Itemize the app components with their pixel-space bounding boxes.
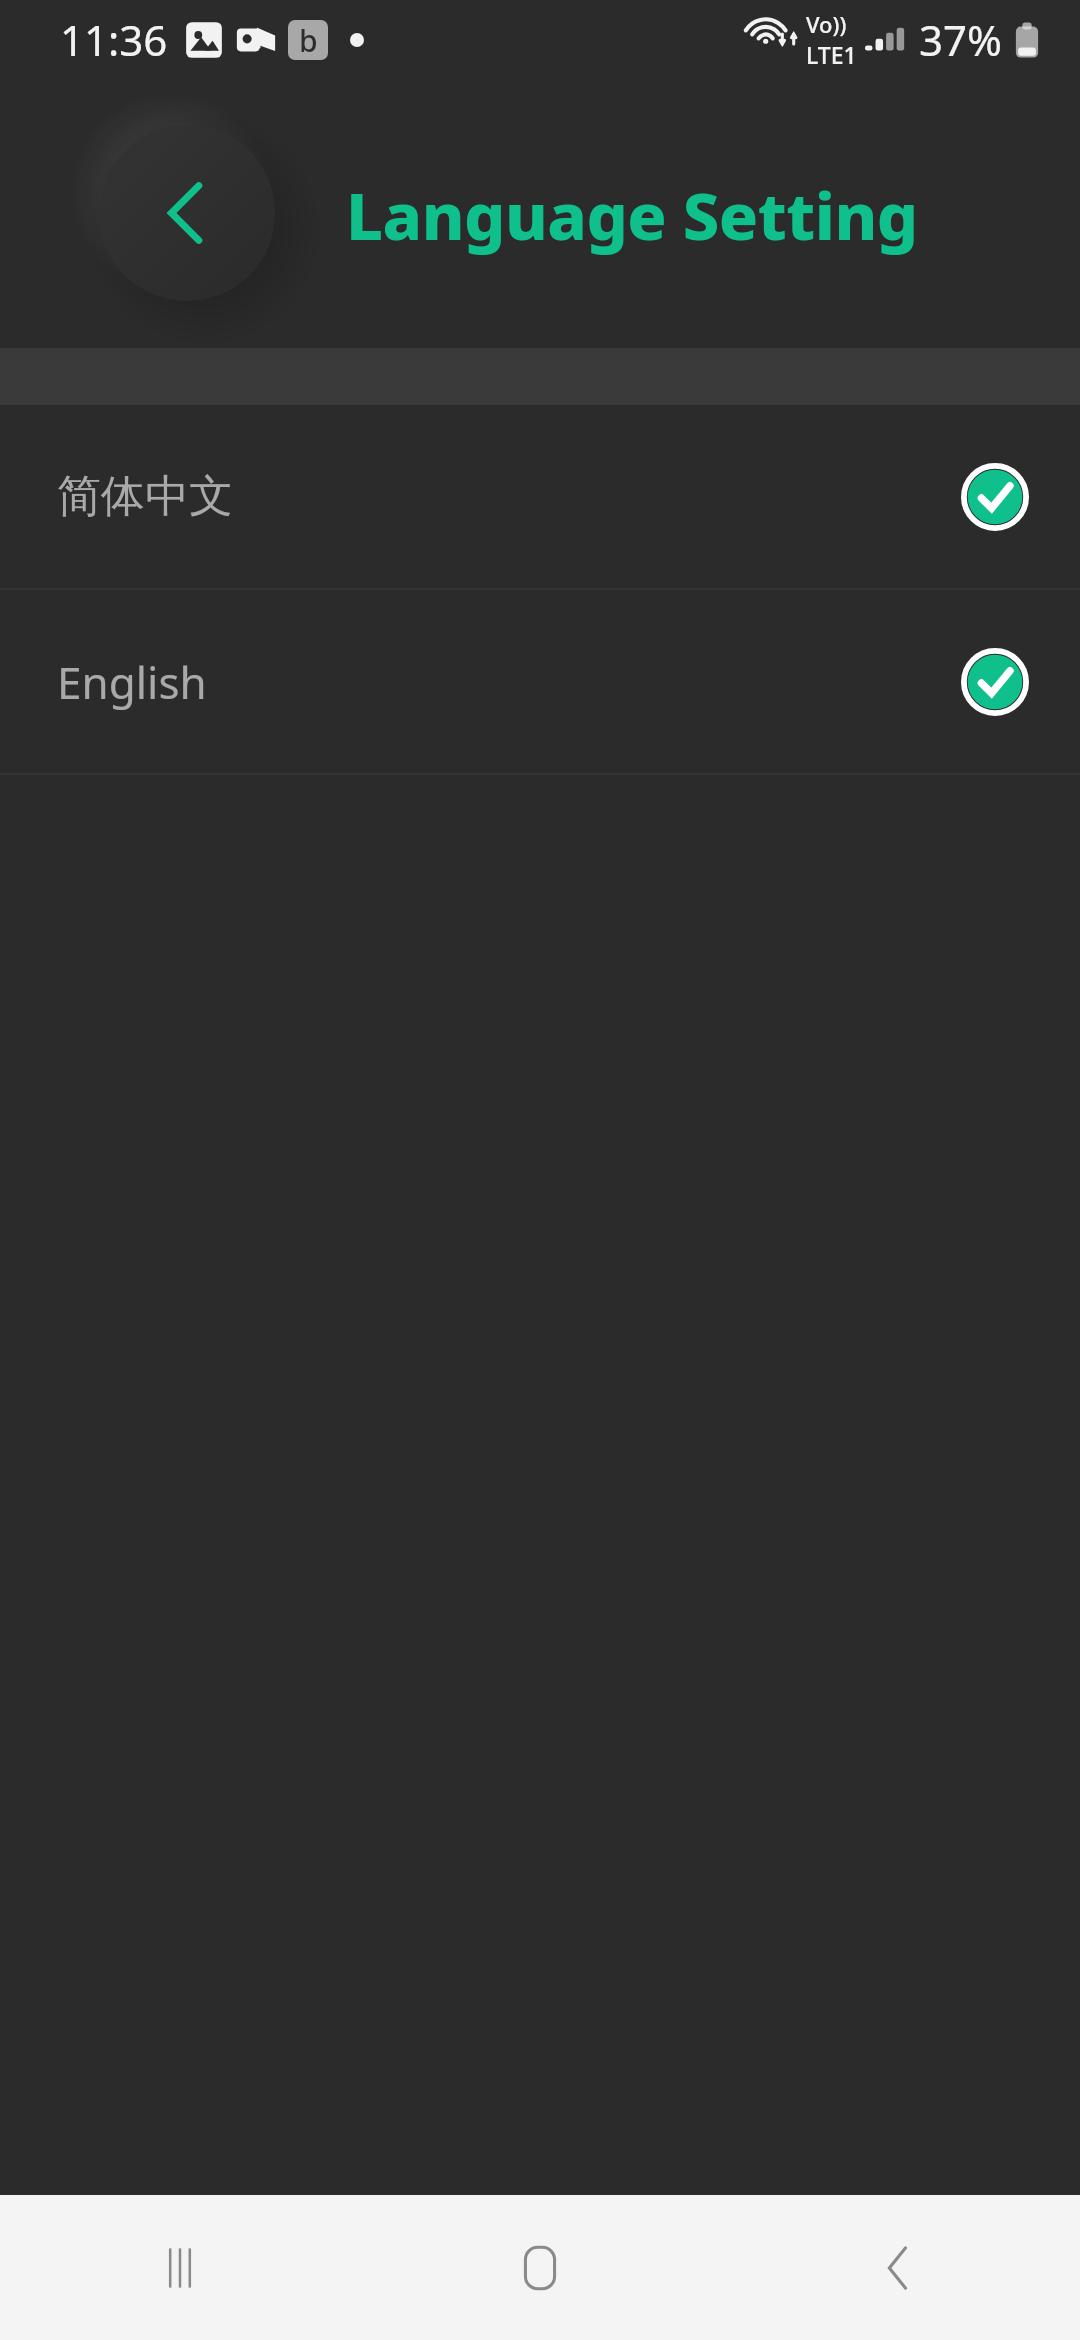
staticText: Vo)) <box>806 9 847 39</box>
button[interactable]: Home <box>360 2195 720 2340</box>
button[interactable]: Back <box>99 125 275 301</box>
button[interactable]: English <box>0 590 1080 773</box>
staticText: b <box>299 20 318 60</box>
staticText: 简体中文 <box>57 469 233 524</box>
button[interactable]: 简体中文 <box>0 405 1080 588</box>
staticText: 11:36 <box>60 11 168 68</box>
staticText: English <box>57 652 207 712</box>
staticText: Language Setting <box>346 171 918 260</box>
staticText: LTE1 <box>806 39 857 70</box>
staticText: 37% <box>919 11 1002 68</box>
button[interactable]: Recents <box>0 2195 360 2340</box>
button[interactable]: Back <box>720 2195 1080 2340</box>
